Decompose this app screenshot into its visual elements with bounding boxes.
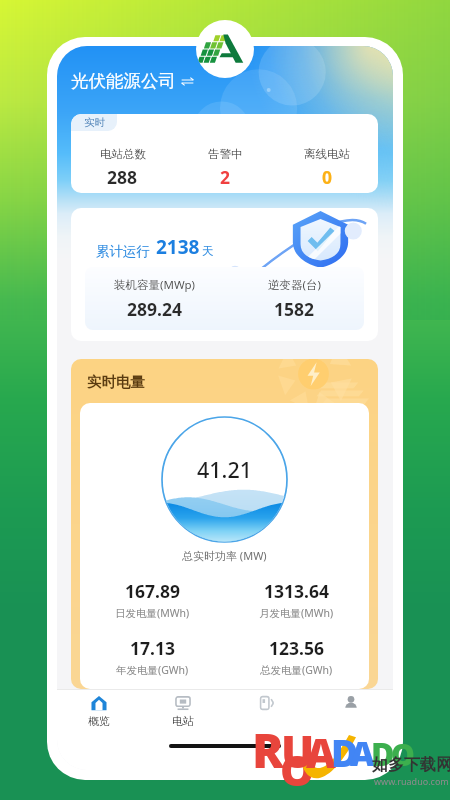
staticText: A xyxy=(306,724,336,780)
staticText: 日发电量(MWh) xyxy=(115,606,190,620)
staticText: A xyxy=(350,730,375,776)
button[interactable]: 实时 xyxy=(71,114,378,193)
staticText: 总发电量(GWh) xyxy=(260,663,333,677)
staticText: 17.13 xyxy=(130,636,175,660)
staticText: 装机容量(MWp) xyxy=(114,277,195,293)
staticText: 概览 xyxy=(88,714,110,728)
staticText: D xyxy=(371,732,395,776)
button[interactable]: 累计运行 xyxy=(71,208,378,341)
staticText: 167.89 xyxy=(125,579,180,603)
staticText: 总实时功率 (MW) xyxy=(182,548,267,563)
staticText: 月发电量(MWh) xyxy=(259,606,334,620)
staticText: U xyxy=(281,721,315,781)
button[interactable]: Power stations xyxy=(141,690,225,730)
staticText: D xyxy=(331,727,359,777)
staticText: 累计运行 xyxy=(96,243,150,260)
staticText: 电站总数 xyxy=(100,147,146,161)
staticText: O xyxy=(280,740,315,799)
staticText: 告警中 xyxy=(208,147,243,161)
other: App logo xyxy=(196,20,254,78)
staticText: R xyxy=(252,718,284,782)
staticText: 光伏能源公司 xyxy=(71,70,176,92)
staticText: O xyxy=(391,734,415,775)
staticText: 实时 xyxy=(84,116,105,129)
staticText: 天 xyxy=(202,244,214,258)
staticText: 1313.64 xyxy=(264,579,329,603)
button[interactable]: Overview xyxy=(57,690,141,730)
staticText: 逆变器(台) xyxy=(268,277,321,293)
button[interactable]: Profile xyxy=(309,690,393,730)
staticText: 41.21 xyxy=(197,455,253,484)
staticText: 离线电站 xyxy=(304,147,350,161)
staticText: 123.56 xyxy=(269,636,324,660)
staticText: www.ruaduo.com xyxy=(374,775,449,787)
staticText: 288 xyxy=(107,165,138,189)
staticText: 289.24 xyxy=(127,297,182,321)
staticText: 2138 xyxy=(156,234,200,260)
staticText: 实时电量 xyxy=(87,373,145,391)
staticText: 如多下载网 xyxy=(372,755,450,775)
button[interactable]: Devices xyxy=(225,690,309,730)
staticText: 1582 xyxy=(274,297,315,321)
staticText: 电站 xyxy=(172,714,194,728)
staticText: 2 xyxy=(220,165,231,189)
staticText: 0 xyxy=(322,165,333,189)
staticText: 年发电量(GWh) xyxy=(116,663,189,677)
